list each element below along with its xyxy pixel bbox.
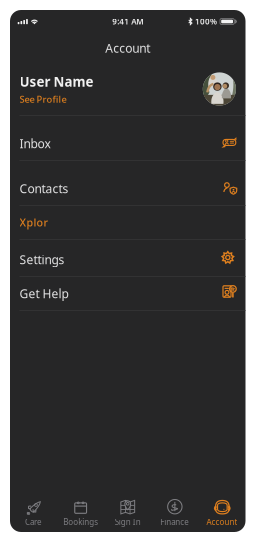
staticText: Settings [19, 252, 64, 267]
button[interactable]: Get Help [10, 277, 245, 310]
staticText: Inbox [19, 136, 50, 151]
button[interactable]: Inbox [10, 116, 245, 160]
staticText: Account [206, 517, 237, 527]
button[interactable]: Care [10, 486, 57, 531]
staticText: Sign In [115, 517, 141, 527]
staticText: 9:41 AM [112, 16, 143, 27]
button[interactable]: See Profile [19, 93, 66, 105]
button[interactable]: Account [198, 486, 245, 531]
button[interactable]: Settings [10, 240, 245, 276]
staticText: Xplor [19, 215, 48, 229]
staticText: Get Help [19, 286, 68, 301]
staticText: User Name [19, 73, 93, 90]
button[interactable]: Contacts [10, 161, 245, 205]
staticText: 100% [195, 16, 217, 27]
staticText: See Profile [19, 93, 66, 105]
staticText: Account [105, 40, 150, 56]
staticText: Contacts [19, 181, 68, 196]
staticText: Bookings [63, 517, 98, 527]
staticText: Care [25, 517, 42, 527]
staticText: Finance [160, 517, 189, 527]
button[interactable]: Bookings [57, 486, 104, 531]
button[interactable]: Finance [151, 486, 198, 531]
button[interactable]: Sign In [104, 486, 151, 531]
